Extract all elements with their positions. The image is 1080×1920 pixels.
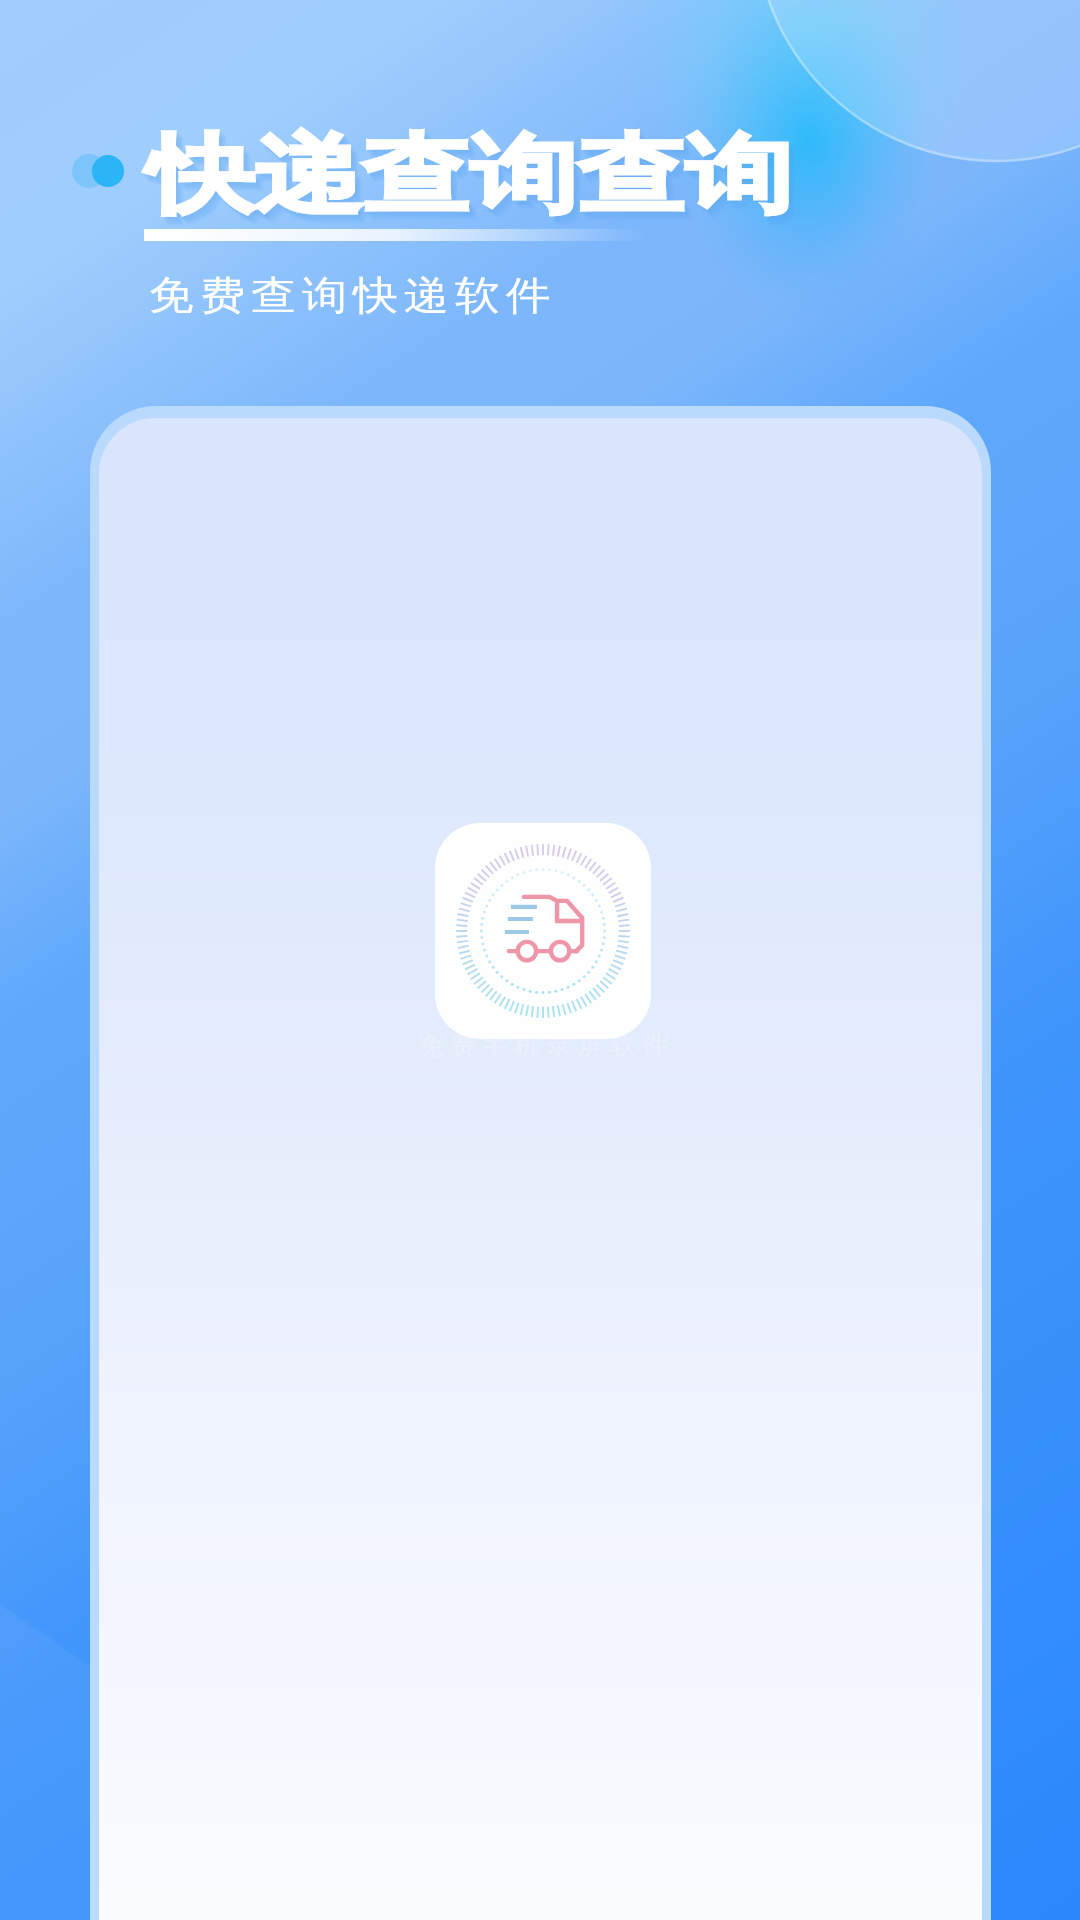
staticText: 快递查询查询 [149, 124, 795, 232]
staticText: 快递查询查询 [147, 122, 793, 229]
staticText: 快递查询查询 [153, 129, 799, 237]
staticText: 快递查询查询 [154, 131, 800, 238]
staticText: 快递查询查询 [151, 127, 797, 234]
staticText: 快递查询查询 [150, 126, 796, 233]
staticText: 免费查询快递软件 [146, 271, 554, 321]
button[interactable]: 快递查询 app icon [435, 823, 651, 1039]
staticText: 免费手机录屏软件 [415, 1030, 671, 1061]
staticText: 快递查询查询 [152, 129, 798, 236]
